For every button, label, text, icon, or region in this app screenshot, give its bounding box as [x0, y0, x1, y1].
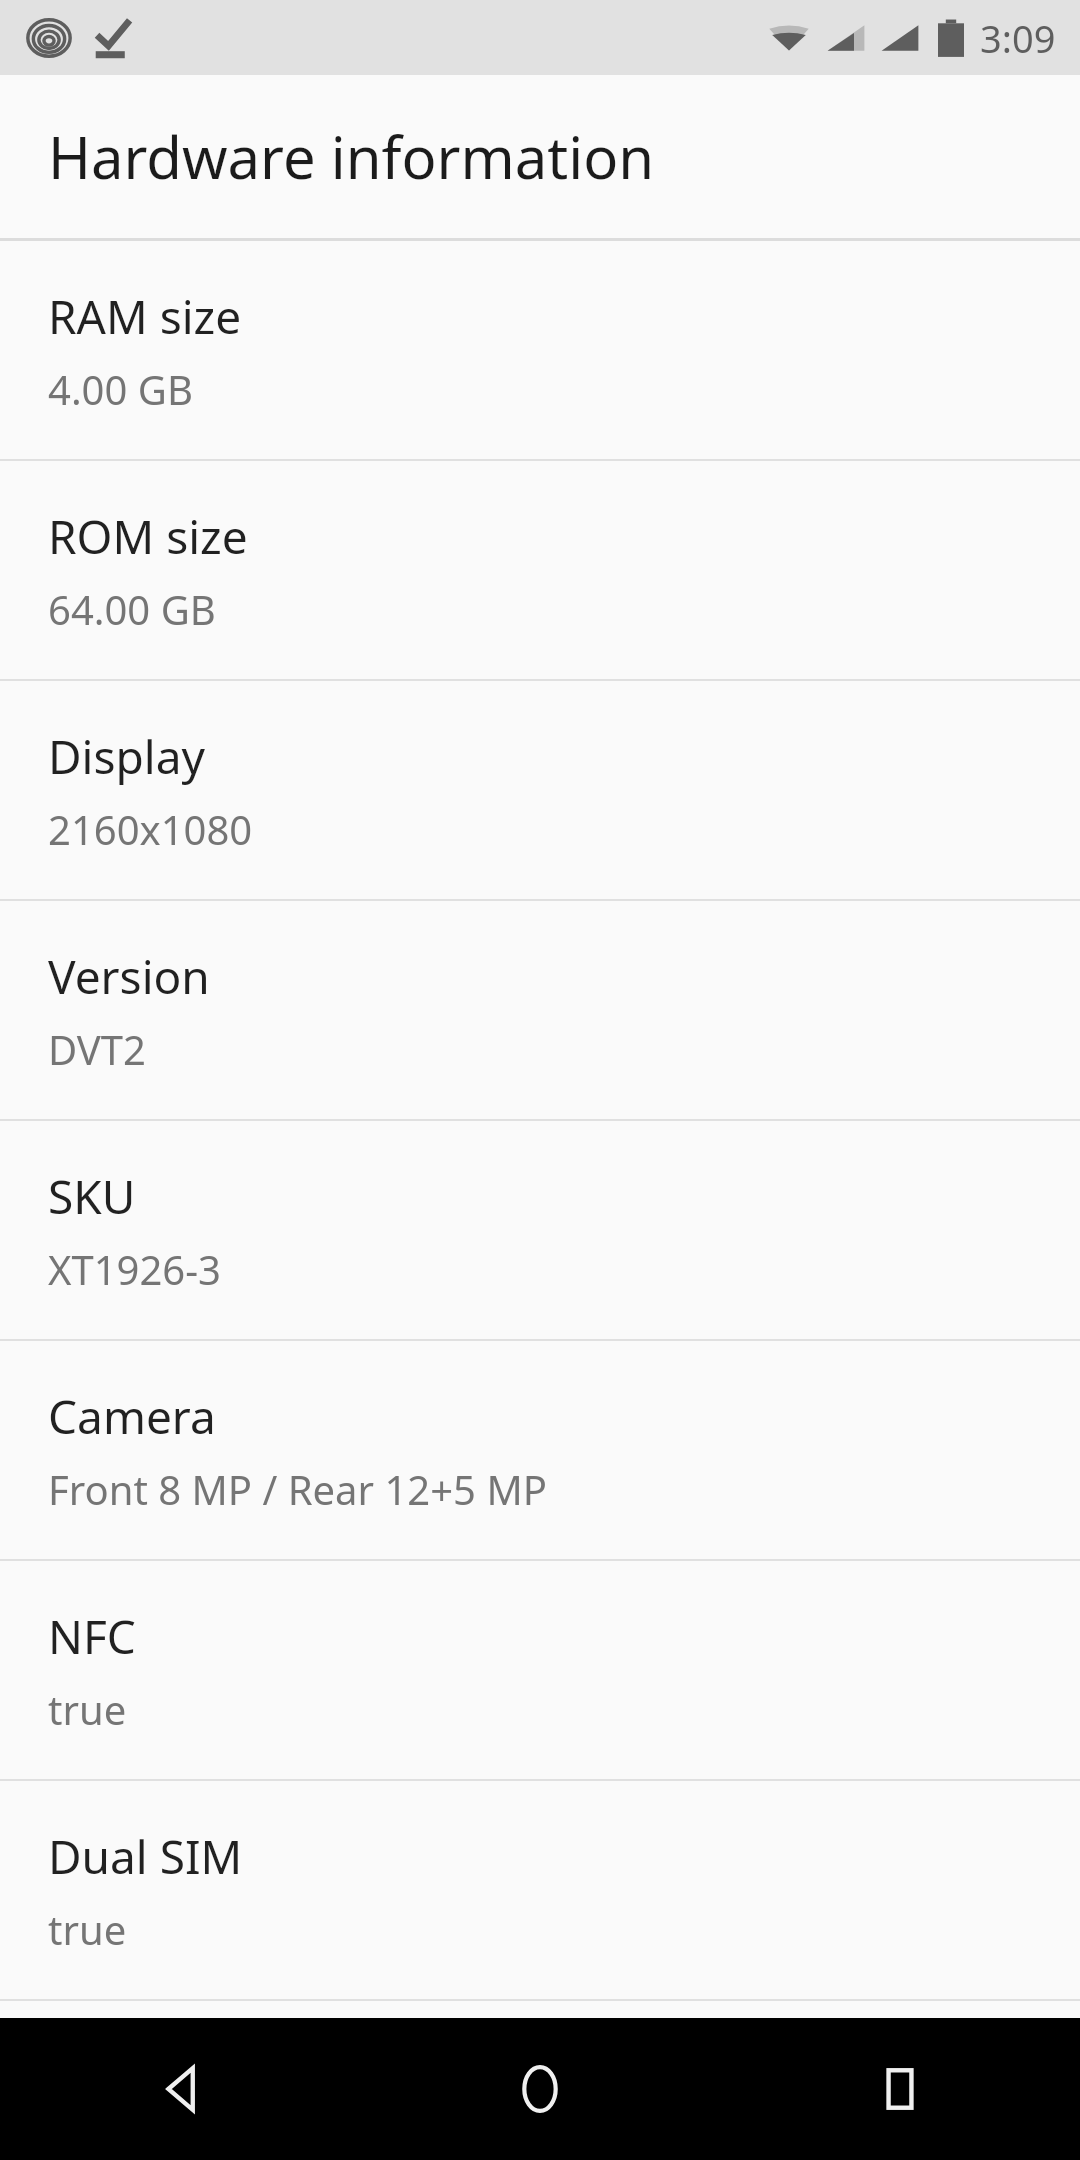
- staticText: true: [48, 1902, 127, 1956]
- staticText: ROM size: [48, 505, 248, 568]
- button[interactable]: Version: [0, 901, 1080, 1119]
- staticText: 4.00 GB: [48, 362, 193, 416]
- staticText: 3:09: [980, 12, 1056, 64]
- button[interactable]: SKU: [0, 1121, 1080, 1339]
- staticText: XT1926-3: [48, 1242, 221, 1296]
- staticText: NFC: [48, 1605, 136, 1668]
- button[interactable]: Home: [360, 2018, 720, 2160]
- button[interactable]: ROM size: [0, 461, 1080, 679]
- button[interactable]: Camera: [0, 1341, 1080, 1559]
- staticText: Dual SIM: [48, 1825, 243, 1888]
- staticText: Version: [48, 945, 210, 1008]
- staticText: Display: [48, 725, 205, 788]
- staticText: Camera: [48, 1385, 216, 1448]
- button[interactable]: NFC: [0, 1561, 1080, 1779]
- staticText: 64.00 GB: [48, 582, 216, 636]
- button[interactable]: Display: [0, 681, 1080, 899]
- staticText: RAM size: [48, 285, 242, 348]
- staticText: true: [48, 1682, 127, 1736]
- button[interactable]: Dual SIM: [0, 1781, 1080, 1999]
- staticText: DVT2: [48, 1022, 146, 1076]
- staticText: Hardware information: [48, 117, 655, 196]
- button[interactable]: Recent apps: [720, 2018, 1080, 2160]
- button[interactable]: RAM size: [0, 241, 1080, 459]
- staticText: SKU: [48, 1165, 136, 1228]
- staticText: Front 8 MP / Rear 12+5 MP: [48, 1462, 547, 1516]
- staticText: 2160x1080: [48, 802, 253, 856]
- button[interactable]: Back: [0, 2018, 360, 2160]
